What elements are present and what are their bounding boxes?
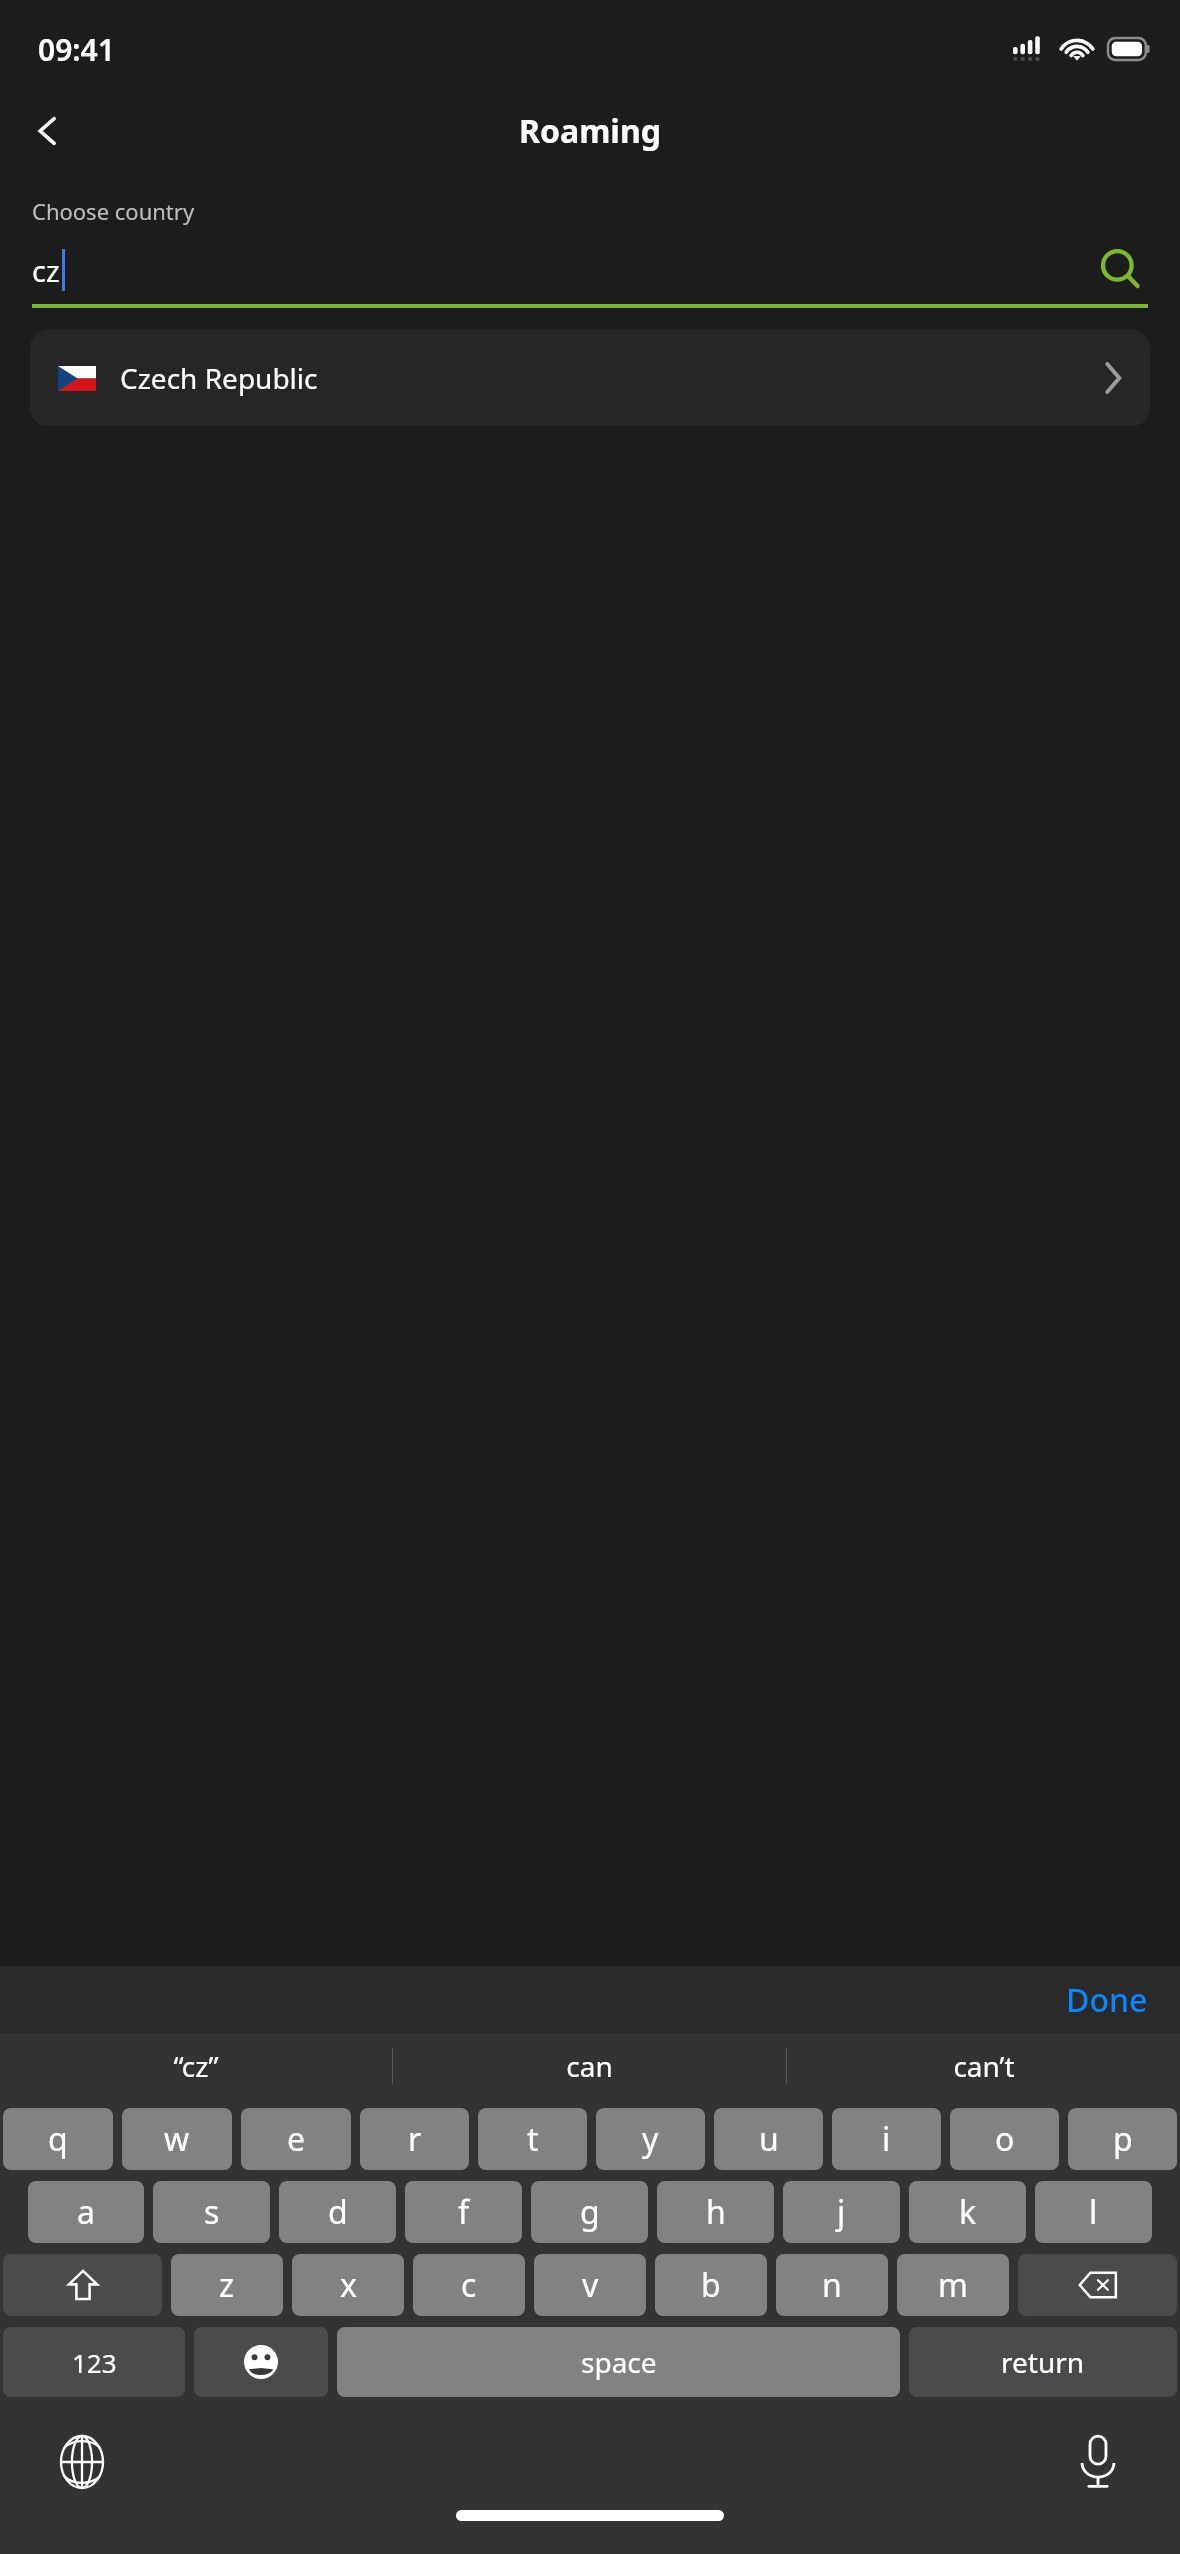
staticText: n xyxy=(822,2263,842,2307)
button[interactable]: 123 xyxy=(3,2327,185,2397)
button[interactable]: Change keyboard language xyxy=(46,2426,118,2498)
staticText: w xyxy=(164,2117,190,2161)
button[interactable]: t xyxy=(478,2108,587,2170)
staticText: e xyxy=(287,2117,306,2161)
staticText: y xyxy=(642,2117,659,2161)
button[interactable]: d xyxy=(279,2181,396,2243)
staticText: g xyxy=(580,2190,600,2234)
staticText: f xyxy=(458,2190,470,2234)
button[interactable]: Search xyxy=(1094,243,1148,297)
staticText: can’t xyxy=(953,2047,1015,2085)
staticText: t xyxy=(527,2117,539,2161)
staticText: o xyxy=(995,2117,1015,2161)
button[interactable]: y xyxy=(596,2108,705,2170)
button[interactable]: can xyxy=(393,2034,786,2098)
button[interactable]: j xyxy=(783,2181,900,2243)
button[interactable]: l xyxy=(1035,2181,1152,2243)
button[interactable]: Czech Republic xyxy=(30,330,1150,426)
button[interactable]: f xyxy=(405,2181,522,2243)
button[interactable]: Done xyxy=(1056,1972,1158,2028)
button[interactable]: u xyxy=(714,2108,823,2170)
button[interactable]: o xyxy=(950,2108,1059,2170)
staticText: z xyxy=(219,2263,235,2307)
button[interactable]: z xyxy=(171,2254,283,2316)
staticText: d xyxy=(328,2190,348,2234)
button[interactable]: p xyxy=(1068,2108,1177,2170)
staticText: r xyxy=(408,2117,422,2161)
button[interactable]: Shift xyxy=(3,2254,162,2316)
staticText: s xyxy=(204,2190,220,2234)
button[interactable]: h xyxy=(657,2181,774,2243)
button[interactable]: space xyxy=(337,2327,900,2397)
button[interactable]: w xyxy=(122,2108,232,2170)
button[interactable]: Dictation xyxy=(1062,2426,1134,2498)
staticText: can xyxy=(566,2047,613,2085)
button[interactable]: g xyxy=(531,2181,648,2243)
staticText: Choose country xyxy=(32,196,195,226)
staticText: h xyxy=(706,2190,726,2234)
button[interactable]: e xyxy=(241,2108,351,2170)
button[interactable]: return xyxy=(909,2327,1177,2397)
button[interactable]: a xyxy=(28,2181,144,2243)
button[interactable]: can’t xyxy=(787,2034,1180,2098)
button[interactable]: r xyxy=(360,2108,469,2170)
staticText: Czech Republic xyxy=(120,359,318,397)
staticText: a xyxy=(77,2190,95,2234)
button[interactable]: Back xyxy=(10,93,86,169)
staticText: k xyxy=(959,2190,977,2234)
button[interactable]: s xyxy=(153,2181,270,2243)
staticText: v xyxy=(582,2263,599,2307)
staticText: Done xyxy=(1066,1978,1148,2022)
staticText: Roaming xyxy=(519,109,661,153)
button[interactable]: i xyxy=(832,2108,941,2170)
staticText: 09:41 xyxy=(38,29,115,70)
button[interactable]: k xyxy=(909,2181,1026,2243)
staticText: 123 xyxy=(72,2345,117,2380)
button[interactable]: x xyxy=(292,2254,404,2316)
button[interactable]: v xyxy=(534,2254,646,2316)
button[interactable]: Backspace xyxy=(1018,2254,1177,2316)
staticText: “cz” xyxy=(173,2047,219,2085)
button[interactable]: n xyxy=(776,2254,888,2316)
staticText: u xyxy=(759,2117,779,2161)
button[interactable]: m xyxy=(897,2254,1009,2316)
button[interactable]: Emoji xyxy=(194,2327,328,2397)
staticText: return xyxy=(1001,2343,1085,2381)
staticText: b xyxy=(701,2263,721,2307)
button[interactable]: “cz” xyxy=(0,2034,392,2098)
staticText: p xyxy=(1113,2117,1133,2161)
button[interactable]: cz xyxy=(32,242,1148,298)
staticText: l xyxy=(1089,2190,1098,2234)
staticText: q xyxy=(48,2117,68,2161)
button[interactable]: q xyxy=(3,2108,113,2170)
staticText: x xyxy=(340,2263,357,2307)
staticText: c xyxy=(461,2263,477,2307)
button[interactable]: c xyxy=(413,2254,525,2316)
staticText: i xyxy=(882,2117,891,2161)
staticText: j xyxy=(837,2190,846,2234)
staticText: cz xyxy=(32,251,60,290)
button[interactable]: b xyxy=(655,2254,767,2316)
staticText: m xyxy=(938,2263,968,2307)
staticText: space xyxy=(581,2343,657,2381)
